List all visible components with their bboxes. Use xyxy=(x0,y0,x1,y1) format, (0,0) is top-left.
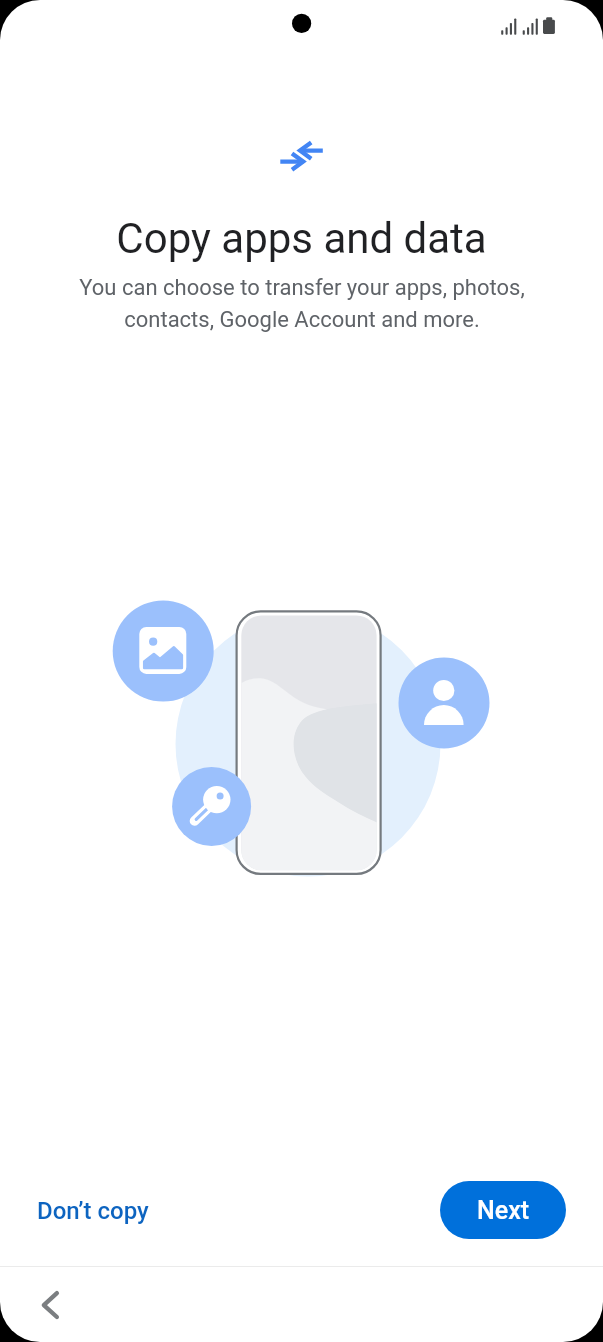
staticText: Copy apps and data xyxy=(116,214,487,263)
button[interactable]: Back xyxy=(24,1279,76,1331)
staticText: You can choose to transfer your apps, ph… xyxy=(76,275,528,333)
button[interactable]: Don’t copy xyxy=(20,1187,166,1235)
staticText: Next xyxy=(477,1196,530,1225)
button[interactable]: Next xyxy=(440,1181,566,1239)
staticText: Don’t copy xyxy=(37,1197,149,1225)
